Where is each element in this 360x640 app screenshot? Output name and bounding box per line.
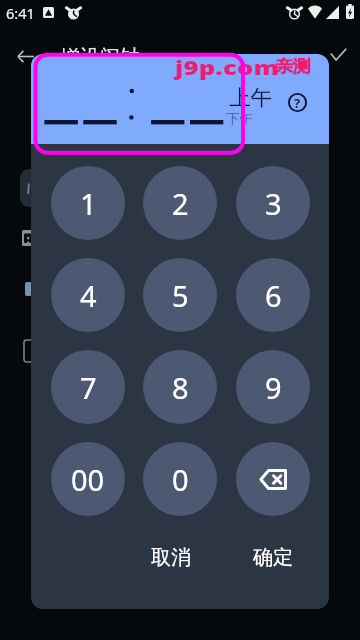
staticText: 取消 bbox=[151, 545, 191, 570]
button[interactable]: Help bbox=[286, 91, 309, 114]
button[interactable]: 00 bbox=[51, 442, 125, 516]
button[interactable]: 9 bbox=[236, 350, 310, 424]
staticText: 确定 bbox=[253, 545, 293, 570]
button[interactable]: 确定 bbox=[230, 535, 316, 579]
staticText: 7 bbox=[80, 368, 97, 407]
staticText: 1 bbox=[80, 184, 97, 223]
button[interactable]: 6 bbox=[236, 258, 310, 332]
staticText: 6 bbox=[265, 276, 282, 315]
staticText: 下午 bbox=[226, 110, 253, 127]
staticText: ? bbox=[294, 94, 301, 112]
staticText: 5 bbox=[172, 276, 189, 315]
button[interactable]: Backspace bbox=[236, 442, 310, 516]
staticText: 0 bbox=[172, 460, 189, 499]
button[interactable]: Back bbox=[9, 40, 41, 72]
staticText: j9p.com bbox=[175, 55, 279, 81]
button[interactable]: 7 bbox=[51, 350, 125, 424]
staticText: 00 bbox=[71, 460, 105, 499]
button[interactable]: 1 bbox=[51, 166, 125, 240]
button[interactable]: 4 bbox=[51, 258, 125, 332]
staticText: 增设闹钟 bbox=[60, 45, 140, 70]
button[interactable]: 0 bbox=[143, 442, 217, 516]
staticText: 2 bbox=[172, 184, 189, 223]
staticText: 3 bbox=[265, 184, 282, 223]
button[interactable]: 8 bbox=[143, 350, 217, 424]
staticText: 9 bbox=[265, 368, 282, 407]
button[interactable]: 取消 bbox=[128, 535, 214, 579]
button[interactable]: 5 bbox=[143, 258, 217, 332]
button[interactable]: 2 bbox=[143, 166, 217, 240]
staticText: 4 bbox=[80, 276, 97, 315]
staticText: 亲测 bbox=[275, 57, 311, 77]
button[interactable]: 3 bbox=[236, 166, 310, 240]
staticText: 6:41 bbox=[6, 3, 35, 23]
staticText: 上午 bbox=[229, 84, 272, 111]
button[interactable]: 上午 bbox=[31, 54, 329, 144]
button[interactable]: Save bbox=[322, 38, 354, 70]
staticText: 8 bbox=[172, 368, 189, 407]
